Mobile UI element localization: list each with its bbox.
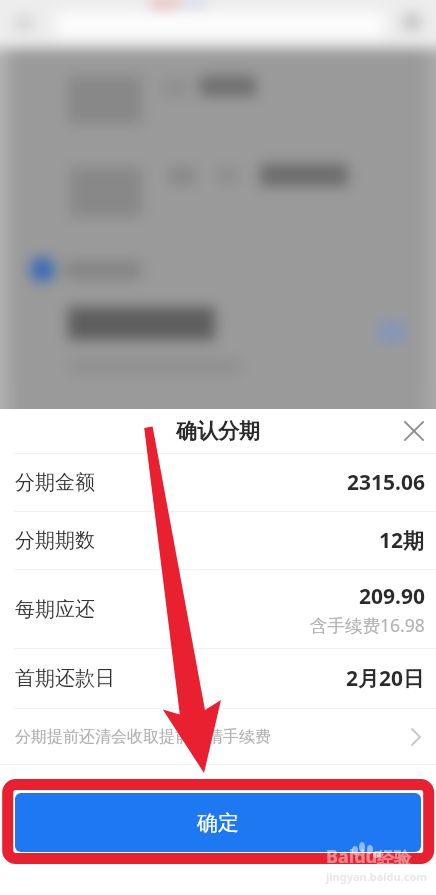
- staticText: 分期期数: [15, 528, 95, 553]
- staticText: 每期应还: [15, 597, 95, 622]
- staticText: 2315.06: [347, 468, 425, 497]
- staticText: 含手续费16.98: [310, 613, 425, 637]
- staticText: 12期: [379, 526, 425, 555]
- button[interactable]: Close: [396, 413, 432, 449]
- staticText: 分期提前还清会收取提前还清手续费: [15, 727, 271, 747]
- button[interactable]: 分期提前还清会收取提前还清手续费: [0, 709, 436, 764]
- staticText: 2月20日: [346, 664, 425, 693]
- staticText: jingyan.baidu.com: [326, 869, 428, 884]
- staticText: 首期还款日: [15, 666, 115, 691]
- staticText: 确认分期: [176, 418, 260, 444]
- staticText: 209.90: [359, 582, 425, 611]
- button[interactable]: 确定: [15, 793, 421, 852]
- staticText: 经验: [377, 848, 411, 869]
- staticText: 分期金额: [15, 470, 95, 495]
- staticText: Baidu: [326, 844, 378, 869]
- staticText: 确定: [197, 810, 239, 836]
